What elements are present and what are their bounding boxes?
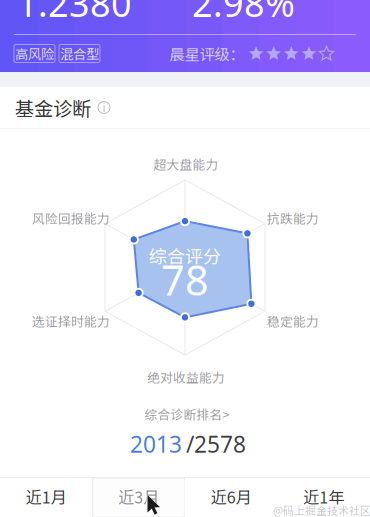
- button[interactable]: 近1年: [277, 478, 370, 517]
- staticText: 混合型: [60, 44, 99, 63]
- staticText: 综合诊断排名>: [144, 405, 229, 423]
- staticText: 近1月: [26, 485, 67, 508]
- staticText: 近1年: [303, 485, 344, 508]
- staticText: 抗跌能力: [267, 209, 319, 227]
- staticText: 晨星评级：: [170, 42, 245, 65]
- button[interactable]: 基金诊断说明: [97, 100, 111, 114]
- staticText: 超大盘能力: [153, 155, 218, 173]
- staticText: 高风险: [15, 44, 54, 63]
- button[interactable]: 近1月: [0, 478, 92, 517]
- staticText: 1.2380: [17, 0, 132, 27]
- staticText: /2578: [186, 429, 246, 459]
- staticText: 绝对收益能力: [147, 368, 225, 386]
- button[interactable]: 近6月: [185, 478, 277, 517]
- staticText: 2.98%: [192, 0, 295, 27]
- button[interactable]: 综合诊断排名>: [144, 405, 229, 423]
- staticText: 选证择时能力: [32, 312, 110, 330]
- staticText: 近6月: [211, 485, 252, 508]
- staticText: 基金诊断: [15, 93, 91, 121]
- staticText: 78: [161, 252, 209, 307]
- staticText: 综合评分: [149, 242, 221, 269]
- staticText: 2013: [130, 429, 182, 459]
- staticText: i: [102, 99, 105, 115]
- staticText: 稳定能力: [267, 312, 319, 330]
- staticText: @码上掘金技术社区: [273, 502, 370, 517]
- button[interactable]: 近3月: [92, 478, 185, 517]
- staticText: 风险回报能力: [32, 209, 110, 227]
- staticText: 近3月: [118, 485, 159, 508]
